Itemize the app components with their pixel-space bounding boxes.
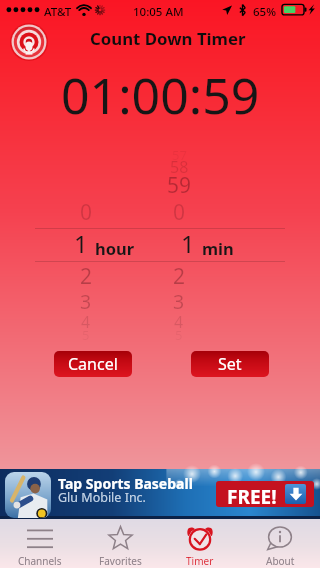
staticText: min (202, 237, 234, 259)
staticText: About (266, 554, 295, 568)
staticText: 59 (167, 171, 192, 200)
staticText: hour (95, 237, 135, 259)
staticText: 10:05 AM (133, 4, 184, 20)
staticText: Set (218, 353, 242, 375)
staticText: Glu Mobile Inc. (58, 489, 146, 506)
staticText: 1 (74, 227, 88, 260)
staticText: 5 (175, 326, 183, 344)
button[interactable]: Channels (0, 519, 80, 568)
button[interactable]: FREE! (219, 484, 311, 504)
button[interactable]: Cancel (54, 351, 132, 377)
staticText: Tap Sports Baseball (58, 474, 193, 493)
staticText: 1 (181, 227, 195, 260)
staticText: 3 (80, 288, 92, 315)
staticText: 4 (174, 311, 184, 333)
staticText: Count Down Timer (90, 27, 246, 50)
staticText: FREE! (227, 484, 277, 504)
staticText: 0 (173, 198, 186, 227)
staticText: 01:00:59 (61, 61, 260, 129)
staticText: 57 (172, 146, 187, 164)
staticText: 58 (170, 156, 189, 178)
staticText: 4 (81, 311, 91, 333)
staticText: 5 (82, 326, 90, 344)
staticText: 3 (173, 288, 185, 315)
button[interactable]: Favorites (80, 519, 160, 568)
button[interactable]: Set (191, 351, 269, 377)
staticText: 65% (253, 4, 276, 20)
staticText: Channels (18, 554, 62, 568)
staticText: 0 (80, 198, 93, 227)
button[interactable]: Tap Sports Baseball (0, 469, 320, 519)
staticText: Timer (186, 554, 214, 568)
button[interactable]: Timer (160, 519, 240, 568)
staticText: Favorites (99, 554, 142, 568)
staticText: AT&T (44, 4, 72, 20)
button[interactable]: About (240, 519, 320, 568)
staticText: 2 (173, 262, 186, 291)
staticText: Cancel (68, 353, 118, 375)
staticText: 2 (80, 262, 93, 291)
